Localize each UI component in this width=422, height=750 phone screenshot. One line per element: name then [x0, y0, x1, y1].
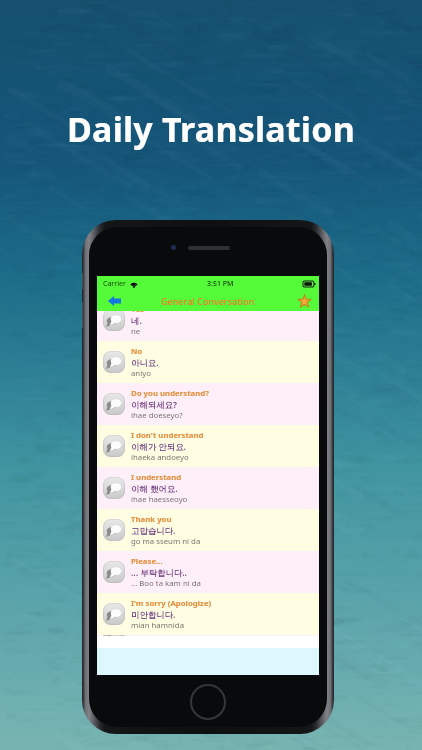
staticText: go ma sseum ni da — [131, 536, 201, 547]
button[interactable]: Back — [105, 292, 123, 310]
button[interactable]: I understand — [97, 467, 319, 509]
staticText: ... 부탁합니다.. — [131, 567, 187, 578]
staticText: Thank you — [131, 514, 172, 525]
button[interactable]: Favorite — [296, 293, 313, 310]
staticText: I'm sorry (Apologize) — [131, 598, 212, 609]
staticText: Do you understand? — [131, 388, 209, 399]
staticText: No — [131, 346, 143, 357]
staticText: 이해가 안되요. — [131, 441, 186, 452]
staticText: 아니요. — [131, 357, 159, 368]
button[interactable]: Thank you — [97, 509, 319, 551]
staticText: I don't understand — [131, 430, 204, 441]
staticText: General Conversation — [161, 295, 255, 307]
button[interactable]: I don't understand — [97, 425, 319, 467]
staticText: 이해 했어요. — [131, 483, 178, 494]
staticText: Please... — [131, 556, 163, 567]
staticText: aniyo — [131, 368, 151, 379]
staticText: Daily Translation — [67, 106, 355, 152]
staticText: ihae haesseoyo — [131, 494, 188, 505]
staticText: ihaeka andoeyo — [131, 452, 189, 463]
staticText: I understand — [131, 472, 182, 483]
staticText: Carrier — [103, 279, 126, 289]
staticText: 네. — [131, 315, 142, 326]
button[interactable]: No — [97, 341, 319, 383]
staticText: ... Boo ta kam ni da — [131, 578, 201, 589]
button[interactable]: Do you understand? — [97, 383, 319, 425]
button[interactable]: Please say that again — [97, 635, 319, 636]
staticText: 고맙습니다. — [131, 525, 176, 536]
staticText: 이해되세요? — [131, 399, 177, 410]
staticText: ne — [131, 326, 141, 337]
staticText: 미안합니다. — [131, 609, 176, 620]
staticText: mian hamnida — [131, 620, 185, 631]
staticText: Yes — [131, 311, 145, 315]
staticText: ihae doeseyo? — [131, 410, 183, 421]
staticText: 3:51 PM — [207, 279, 234, 289]
button[interactable]: I'm sorry (Apologize) — [97, 593, 319, 635]
button[interactable]: Yes — [97, 311, 319, 341]
button[interactable]: Please... — [97, 551, 319, 593]
